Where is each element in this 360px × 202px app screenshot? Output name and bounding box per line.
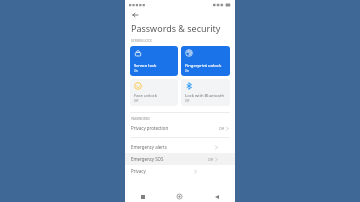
staticText: Fingerprint unlock <box>185 63 222 69</box>
button[interactable]: Home <box>161 191 198 202</box>
staticText: Passwords & security <box>131 22 221 34</box>
staticText: Off <box>134 99 139 103</box>
staticText: Off <box>219 126 224 131</box>
button[interactable]: Back <box>198 191 235 202</box>
staticText: Emergency alerts <box>131 144 167 150</box>
button[interactable]: Face unlock <box>130 79 178 106</box>
staticText: On <box>134 69 139 73</box>
staticText: On <box>185 69 190 73</box>
button[interactable]: Emergency alerts <box>125 141 235 153</box>
button[interactable]: Privacy protection password <box>125 122 235 134</box>
staticText: Off <box>208 157 213 162</box>
button[interactable]: Lock with Bluetooth <box>181 79 230 106</box>
button[interactable]: Screen lock <box>130 46 178 76</box>
staticText: Privacy protection password <box>131 125 175 131</box>
staticText: SCREEN LOCK <box>131 39 152 43</box>
staticText: Privacy <box>131 168 146 174</box>
staticText: PASSWORDS <box>131 117 150 121</box>
staticText: Emergency SOS <box>131 156 164 162</box>
staticText: Off <box>185 99 190 103</box>
button[interactable]: Emergency SOS <box>125 153 235 165</box>
button[interactable]: Fingerprint unlock <box>181 46 230 76</box>
button[interactable]: Privacy <box>125 165 235 177</box>
button[interactable]: Recents <box>125 191 161 202</box>
button[interactable]: Back <box>130 10 139 19</box>
staticText: Face unlock <box>134 93 158 99</box>
staticText: Screen lock <box>134 63 157 69</box>
staticText: Lock with Bluetooth <box>185 93 225 99</box>
